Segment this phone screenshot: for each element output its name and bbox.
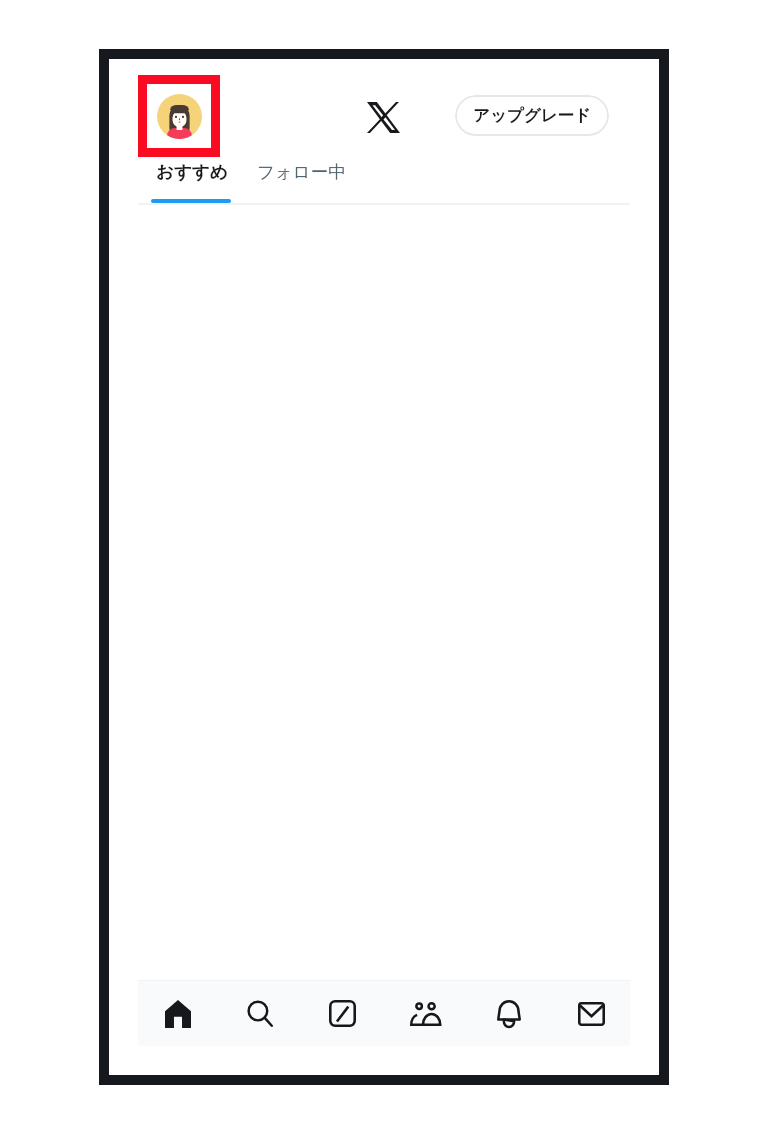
button[interactable]: X home — [361, 95, 406, 140]
button[interactable]: Communities — [384, 981, 467, 1046]
staticText: フォロー中 — [257, 161, 346, 183]
button[interactable]: アップグレード — [455, 95, 609, 136]
button[interactable]: Notifications — [467, 981, 550, 1046]
staticText: アップグレード — [473, 105, 591, 126]
button[interactable]: Grok — [301, 981, 384, 1046]
staticText: おすすめ — [156, 161, 228, 183]
button[interactable]: おすすめ — [138, 149, 246, 195]
button[interactable]: フォロー中 — [248, 149, 354, 195]
button[interactable]: Home — [137, 981, 219, 1046]
button[interactable]: Search — [219, 981, 301, 1046]
button[interactable]: Messages — [550, 981, 633, 1046]
button[interactable]: Profile — [147, 84, 211, 148]
